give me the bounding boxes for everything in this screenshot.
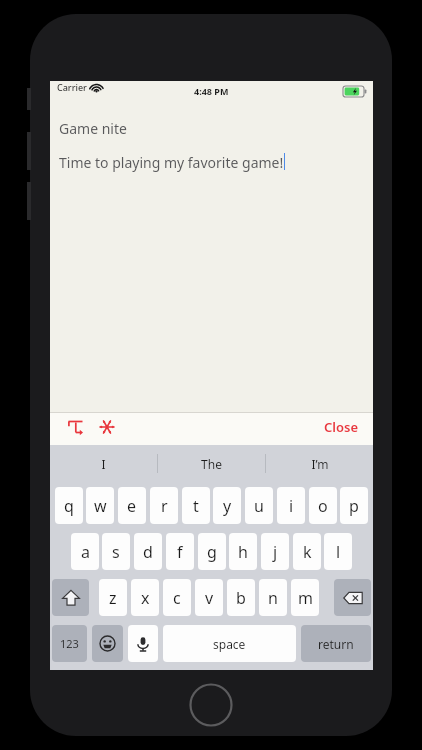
staticText: space [213,636,246,652]
button[interactable]: k [293,533,321,570]
button[interactable]: return [301,625,371,662]
button[interactable]: space [163,625,296,662]
button[interactable]: Indent [60,412,90,442]
button[interactable]: m [291,579,319,616]
button[interactable]: j [261,533,289,570]
staticText: Time to playing my favorite game! [59,153,284,172]
staticText: Close [324,418,359,436]
staticText: q [64,495,74,517]
button[interactable]: o [309,487,337,524]
button[interactable]: n [259,579,287,616]
staticText: u [254,495,264,517]
staticText: s [112,541,120,563]
staticText: a [81,541,90,563]
button[interactable]: p [340,487,368,524]
staticText: b [236,587,246,609]
button[interactable]: r [150,487,178,524]
button[interactable]: I’m [266,445,373,482]
staticText: i [289,495,294,517]
button[interactable]: a [71,533,99,570]
staticText: m [298,587,313,609]
button[interactable]: x [131,579,159,616]
staticText: j [273,541,278,563]
staticText: 123 [60,636,79,651]
staticText: d [143,541,153,563]
staticText: p [349,495,359,517]
button[interactable]: q [55,487,83,524]
button[interactable]: i [277,487,305,524]
staticText: o [318,495,328,517]
button[interactable]: Delete [334,579,371,616]
button[interactable]: Close [320,414,363,440]
staticText: return [318,636,354,652]
staticText: Carrier [57,81,87,93]
staticText: k [303,541,312,563]
staticText: The [201,456,222,472]
staticText: e [127,495,137,517]
button[interactable]: z [99,579,127,616]
button[interactable]: Emoji [92,625,123,662]
button[interactable]: h [229,533,257,570]
staticText: I [101,456,106,472]
staticText: f [177,541,183,563]
button[interactable]: s [102,533,130,570]
staticText: w [94,495,107,517]
button[interactable]: t [182,487,210,524]
button[interactable]: y [213,487,241,524]
button[interactable]: Dictation [128,625,158,662]
staticText: y [223,495,232,517]
button[interactable]: 123 [52,625,87,662]
button[interactable]: Special character [92,412,122,442]
staticText: t [193,495,199,517]
button[interactable]: I [50,445,157,482]
staticText: g [207,541,217,563]
staticText: c [173,587,181,609]
staticText: h [238,541,248,563]
staticText: z [109,587,117,609]
button[interactable]: f [166,533,194,570]
button[interactable]: d [134,533,162,570]
staticText: l [336,541,341,563]
button[interactable]: g [198,533,226,570]
button[interactable]: b [227,579,255,616]
staticText: 4:48 PM [194,85,229,97]
button[interactable]: c [163,579,191,616]
staticText: v [205,587,214,609]
button[interactable]: v [195,579,223,616]
staticText: I’m [311,456,329,472]
button[interactable]: l [324,533,352,570]
button[interactable]: Shift [52,579,89,616]
button[interactable]: The [158,445,265,482]
staticText: n [268,587,278,609]
button[interactable]: e [118,487,146,524]
staticText: x [141,587,150,609]
button[interactable]: w [86,487,114,524]
staticText: r [161,495,168,517]
staticText: Game nite [59,119,127,138]
button[interactable]: u [245,487,273,524]
